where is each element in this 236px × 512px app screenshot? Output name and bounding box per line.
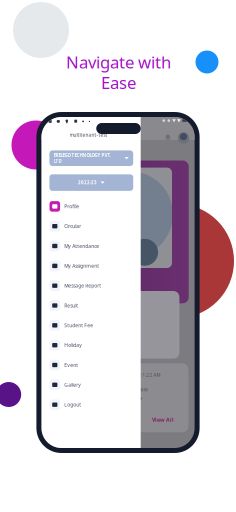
staticText: My Assignment <box>64 263 99 269</box>
button[interactable]: Logout <box>49 398 135 411</box>
staticText: Student Fee <box>64 322 93 329</box>
staticText: Message Report <box>64 282 101 289</box>
staticText: Logout <box>64 401 81 408</box>
button[interactable]: Circular <box>49 220 135 233</box>
staticText: Navigate with <box>66 51 171 73</box>
staticText: ERELEGO TECHNOLOGY PVT. LTD <box>54 152 111 164</box>
staticText: Profile <box>64 203 79 210</box>
button[interactable]: ERELEGO TECHNOLOGY PVT. LTD <box>49 150 133 166</box>
staticText: 2022-23 <box>78 180 97 186</box>
staticText: Gallery <box>64 381 81 388</box>
staticText: Circular <box>64 223 81 229</box>
staticText: My Attendance <box>64 243 99 249</box>
staticText: Ease <box>101 71 136 94</box>
button[interactable]: Result <box>49 299 135 312</box>
staticText: , 19 Mar at 11:22 AM <box>114 372 160 378</box>
button[interactable]: Holiday <box>49 339 135 352</box>
staticText: multitenant-test <box>69 132 107 138</box>
button[interactable]: My Attendance <box>49 239 135 252</box>
staticText: ubjects#] class <box>115 386 147 393</box>
button[interactable]: Student Fee <box>49 319 135 332</box>
button[interactable]: Profile <box>49 200 135 213</box>
staticText: Result <box>64 302 78 309</box>
staticText: t the college <box>114 395 142 402</box>
staticText: Event <box>64 362 78 368</box>
button[interactable]: My Assignment <box>49 259 135 272</box>
button[interactable]: Event <box>49 358 135 371</box>
staticText: View All <box>152 416 174 423</box>
button[interactable]: 2022-23 <box>49 174 133 191</box>
button[interactable]: Gallery <box>49 378 135 391</box>
staticText: Holiday <box>64 342 82 348</box>
button[interactable]: Message Report <box>49 279 135 292</box>
